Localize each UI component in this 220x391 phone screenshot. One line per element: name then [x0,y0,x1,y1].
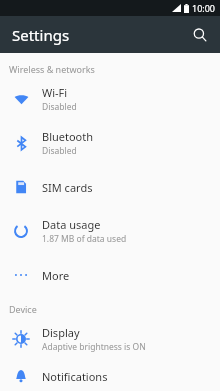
staticText: More [42,268,70,283]
staticText: SIM cards [42,180,93,195]
button[interactable]: Wi-Fi [0,77,220,121]
button[interactable]: Display [0,317,220,361]
staticText: Bluetooth [42,129,94,144]
button[interactable]: Data usage [0,209,220,253]
button[interactable]: Bluetooth [0,121,220,165]
staticText: 1.87 MB of data used [42,233,127,245]
staticText: Wi-Fi [42,85,68,100]
button[interactable]: Search [184,19,216,51]
staticText: Device [9,303,37,315]
staticText: Wireless & networks [9,63,95,75]
button[interactable]: Notifications [0,361,220,391]
staticText: Adaptive brightness is ON [42,341,146,353]
staticText: 10:00 [192,2,216,14]
staticText: Settings [12,25,70,45]
button[interactable]: SIM cards [0,165,220,209]
button[interactable]: More [0,253,220,297]
staticText: Disabled [42,101,77,113]
staticText: Data usage [42,217,101,232]
staticText: Disabled [42,145,77,157]
staticText: Display [42,325,80,340]
staticText: Notifications [42,369,108,384]
